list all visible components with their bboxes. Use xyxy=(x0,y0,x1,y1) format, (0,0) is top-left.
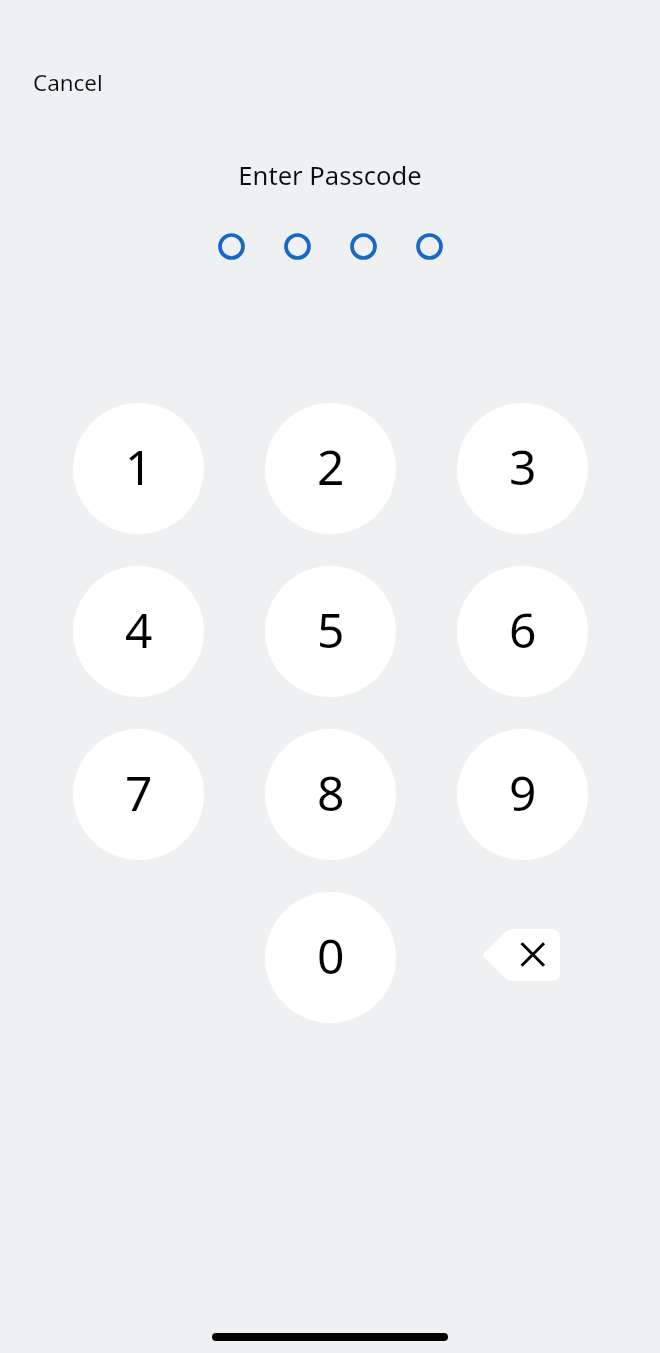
button[interactable]: 9 xyxy=(457,729,588,860)
staticText: 7 xyxy=(125,760,153,825)
staticText: 5 xyxy=(317,597,345,662)
button[interactable]: 5 xyxy=(265,566,396,697)
button[interactable]: 4 xyxy=(73,566,204,697)
staticText: 8 xyxy=(317,760,345,825)
button[interactable]: Delete xyxy=(482,929,560,981)
staticText: 3 xyxy=(509,434,537,499)
staticText: 1 xyxy=(125,434,153,499)
staticText: 6 xyxy=(509,597,537,662)
button[interactable]: 6 xyxy=(457,566,588,697)
button[interactable]: 1 xyxy=(73,403,204,534)
staticText: 0 xyxy=(317,923,345,988)
button[interactable]: 8 xyxy=(265,729,396,860)
button[interactable]: 7 xyxy=(73,729,204,860)
button[interactable]: Cancel xyxy=(21,58,115,107)
staticText: Enter Passcode xyxy=(238,158,422,193)
staticText: Cancel xyxy=(33,67,103,98)
button[interactable]: 3 xyxy=(457,403,588,534)
staticText: 4 xyxy=(125,597,153,662)
button[interactable]: 0 xyxy=(265,892,396,1023)
staticText: 9 xyxy=(509,760,537,825)
staticText: 2 xyxy=(317,434,345,499)
button[interactable]: 2 xyxy=(265,403,396,534)
